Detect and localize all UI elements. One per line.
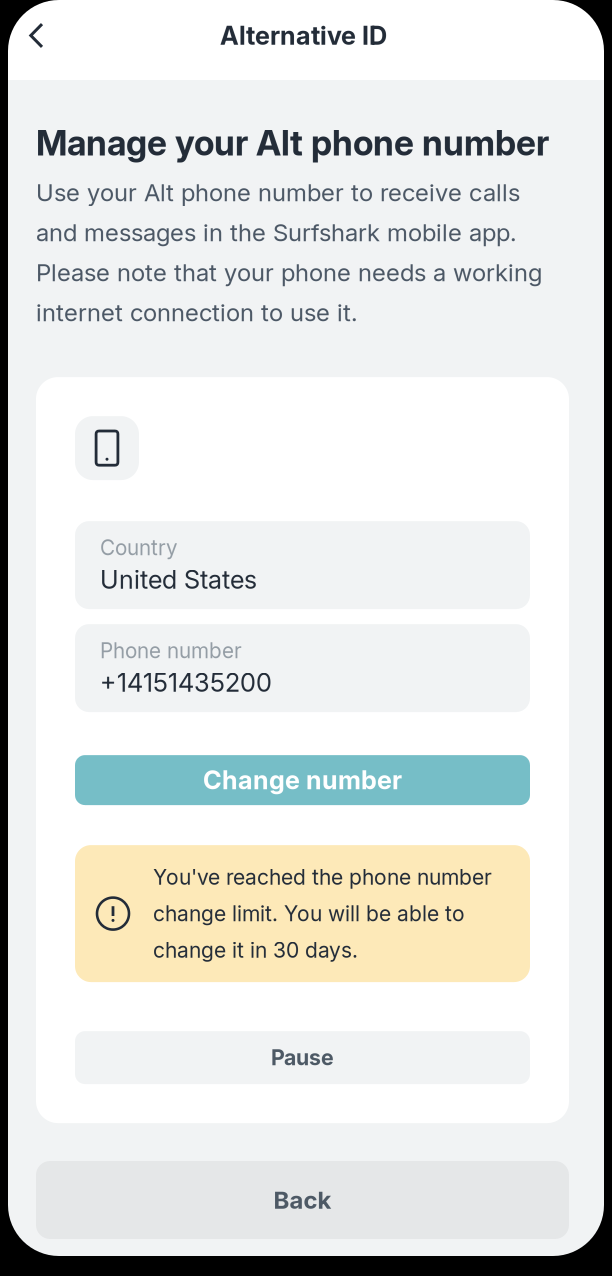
staticText: Pause [271,1045,334,1070]
button[interactable]: Back [36,1161,569,1239]
staticText: Phone number [100,638,242,663]
button[interactable]: Back [8,4,68,66]
staticText: Country [100,535,178,560]
staticText: Alternative ID [220,20,387,51]
button[interactable]: Change number [75,755,530,805]
staticText: Use your Alt phone number to receive cal… [36,178,542,327]
staticText: Back [273,1185,331,1214]
staticText: +14151435200 [100,667,272,698]
staticText: United States [100,564,257,595]
staticText: Change number [203,765,402,795]
button[interactable]: Pause [75,1031,530,1084]
staticText: You've reached the phone number change l… [153,864,492,963]
staticText: Manage your Alt phone number [36,122,549,164]
